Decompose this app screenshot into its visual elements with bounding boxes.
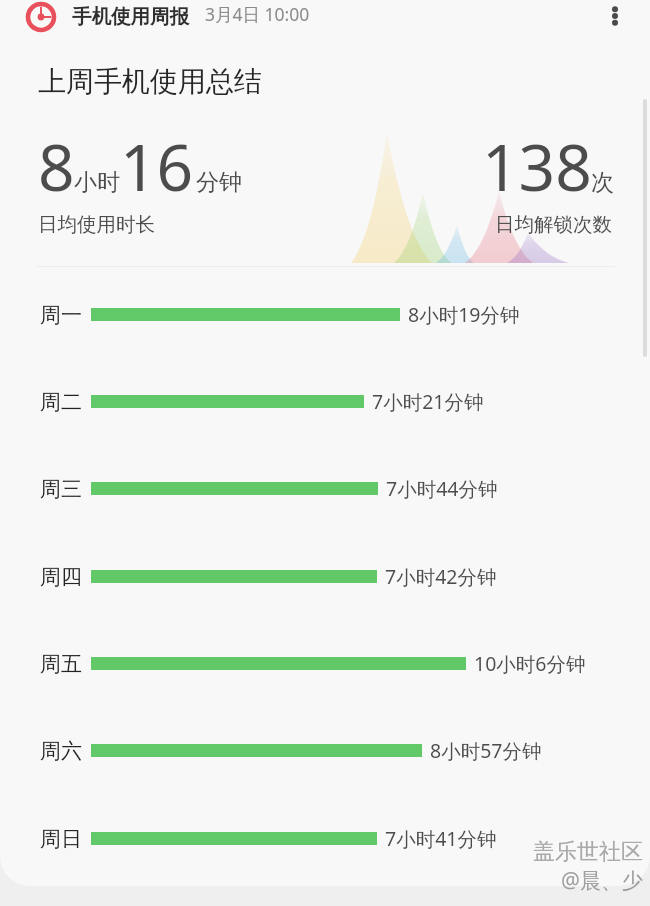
staticText: 周一 (40, 302, 82, 328)
staticText: 8小时57分钟 (430, 737, 542, 764)
staticText: 分钟 (196, 168, 242, 197)
button[interactable]: 周六 (0, 707, 650, 794)
button[interactable]: 周五 (0, 620, 650, 707)
staticText: 7小时42分钟 (385, 563, 497, 590)
staticText: 盖乐世社区 (533, 838, 643, 866)
staticText: 3月4日 10:00 (205, 2, 310, 26)
staticText: 周六 (40, 738, 82, 764)
staticText: 周日 (40, 826, 82, 852)
staticText: 16 (120, 123, 194, 210)
staticText: 7小时41分钟 (385, 825, 497, 852)
button[interactable]: 周一 (0, 271, 650, 358)
staticText: 日均解锁次数 (495, 212, 612, 237)
staticText: 周四 (40, 564, 82, 590)
staticText: 7小时21分钟 (372, 388, 484, 415)
button[interactable]: 周三 (0, 445, 650, 532)
staticText: 次 (591, 168, 614, 197)
staticText: 7小时44分钟 (386, 475, 498, 502)
staticText: 手机使用周报 (72, 4, 189, 29)
staticText: 8小时19分钟 (408, 301, 520, 328)
staticText: 上周手机使用总结 (38, 64, 262, 99)
staticText: 周三 (40, 476, 82, 502)
button[interactable]: 周日 (0, 795, 650, 882)
button[interactable]: 周四 (0, 533, 650, 620)
staticText: @晨、少 (561, 866, 643, 895)
staticText: 小时 (74, 168, 120, 197)
button[interactable]: 周二 (0, 358, 650, 445)
staticText: 138 (482, 123, 592, 210)
staticText: 周二 (40, 389, 82, 415)
button[interactable]: More options (598, 0, 632, 32)
staticText: 10小时6分钟 (474, 650, 586, 677)
staticText: 日均使用时长 (38, 212, 155, 237)
staticText: 8 (38, 123, 75, 210)
staticText: 周五 (40, 651, 82, 677)
